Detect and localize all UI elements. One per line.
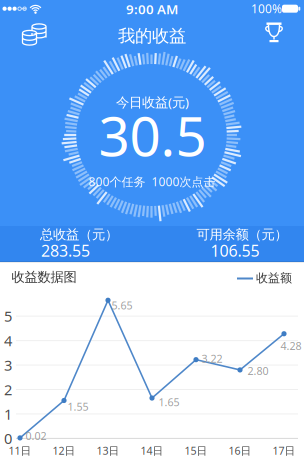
staticText: 106.55 (210, 240, 259, 261)
staticText: 14日 (140, 443, 163, 457)
staticText: 9:00 AM (126, 0, 178, 18)
staticText: 17日 (272, 443, 295, 457)
staticText: 1 (4, 404, 12, 424)
staticText: 今日收益(元) (116, 93, 189, 111)
staticText: 0 (4, 429, 12, 448)
staticText: 12日 (52, 443, 75, 457)
staticText: 3.22 (201, 352, 222, 366)
button[interactable]: 排行榜 (254, 15, 294, 51)
staticText: 5.65 (111, 298, 132, 312)
staticText: 100% (251, 0, 282, 16)
staticText: 我的收益 (118, 25, 186, 47)
staticText: 1.55 (67, 399, 88, 414)
staticText: 4 (4, 331, 12, 350)
staticText: 可用余额（元） (196, 226, 287, 243)
staticText: 2.80 (247, 364, 268, 378)
staticText: 30.5 (98, 99, 206, 171)
staticText: 800个任务 1000次点击 (88, 173, 215, 189)
staticText: 13日 (96, 443, 119, 457)
staticText: 4.28 (280, 339, 301, 353)
staticText: 总收益（元） (40, 226, 118, 243)
staticText: 3 (4, 355, 12, 375)
staticText: 11日 (8, 443, 31, 457)
staticText: 收益额 (256, 271, 292, 285)
staticText: 15日 (184, 443, 207, 457)
button[interactable]: 收益明细 (15, 16, 55, 52)
staticText: 1.65 (158, 395, 179, 409)
staticText: 0.02 (25, 429, 46, 443)
staticText: 283.55 (41, 240, 90, 261)
staticText: 5 (4, 306, 12, 326)
staticText: 2 (4, 380, 12, 399)
staticText: 16日 (228, 443, 251, 457)
staticText: 收益数据图 (11, 269, 76, 285)
